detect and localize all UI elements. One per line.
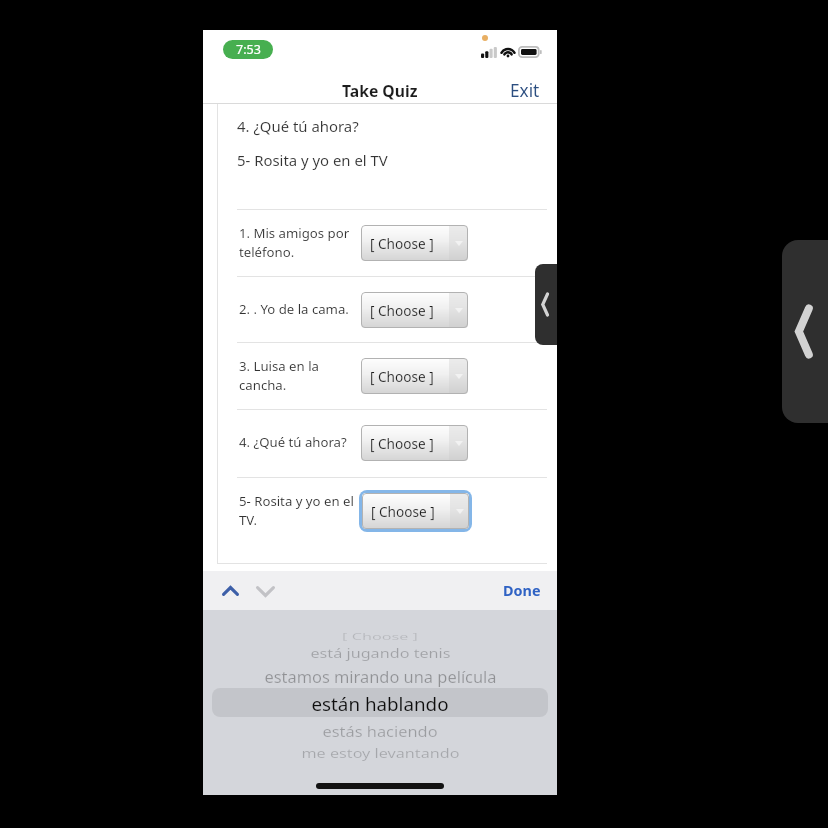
- button[interactable]: 3. Luisa en la cancha.: [203, 342, 557, 409]
- button[interactable]: 4. ¿Qué tú ahora?: [203, 409, 557, 476]
- staticText: Take Quiz: [342, 80, 418, 101]
- button[interactable]: Exit: [494, 73, 557, 107]
- staticText: estás haciendo: [322, 721, 438, 741]
- button[interactable]: estás haciendo: [203, 717, 557, 745]
- staticText: 1. Mis amigos por teléfono.: [239, 224, 350, 260]
- staticText: está jugando tenis: [310, 644, 451, 662]
- staticText: 5- Rosita y yo en el TV: [237, 150, 388, 170]
- staticText: [ Choose ]: [370, 234, 434, 253]
- button[interactable]: Back: [535, 264, 557, 345]
- staticText: Exit: [510, 79, 540, 101]
- button[interactable]: Done: [487, 573, 557, 609]
- staticText: [ Choose ]: [370, 301, 434, 320]
- button[interactable]: estamos mirando una película: [203, 662, 557, 690]
- staticText: Done: [503, 581, 541, 601]
- staticText: 5- Rosita y yo en el TV.: [239, 492, 354, 528]
- staticText: 2. . Yo de la cama.: [239, 300, 349, 318]
- button[interactable]: [ Choose ]: [361, 292, 468, 328]
- button[interactable]: 2. . Yo de la cama.: [203, 276, 557, 343]
- staticText: me estoy levantando: [301, 746, 460, 762]
- staticText: 3. Luisa en la cancha.: [239, 357, 319, 393]
- button[interactable]: Back: [782, 240, 828, 423]
- staticText: [ Choose ]: [370, 434, 434, 453]
- staticText: [ Choose ]: [342, 631, 418, 643]
- staticText: 4. ¿Qué tú ahora?: [239, 433, 347, 451]
- staticText: estamos mirando una película: [264, 665, 497, 686]
- button[interactable]: [ Choose ]: [361, 225, 468, 261]
- staticText: [ Choose ]: [370, 367, 434, 386]
- button[interactable]: 5- Rosita y yo en el TV.: [203, 477, 557, 544]
- button[interactable]: están hablando: [203, 690, 557, 718]
- staticText: [ Choose ]: [371, 502, 435, 521]
- button[interactable]: me estoy levantando: [203, 740, 557, 768]
- button[interactable]: Next field: [248, 574, 282, 608]
- button[interactable]: 1. Mis amigos por teléfono.: [203, 209, 557, 276]
- staticText: 4. ¿Qué tú ahora?: [237, 116, 359, 136]
- staticText: 7:53: [236, 41, 261, 58]
- button[interactable]: [ Choose ]: [361, 425, 468, 461]
- staticText: están hablando: [311, 691, 449, 717]
- button[interactable]: [ Choose ]: [361, 358, 468, 394]
- button[interactable]: Previous field: [213, 574, 247, 608]
- button[interactable]: [ Choose ]: [362, 493, 469, 529]
- button[interactable]: está jugando tenis: [203, 639, 557, 667]
